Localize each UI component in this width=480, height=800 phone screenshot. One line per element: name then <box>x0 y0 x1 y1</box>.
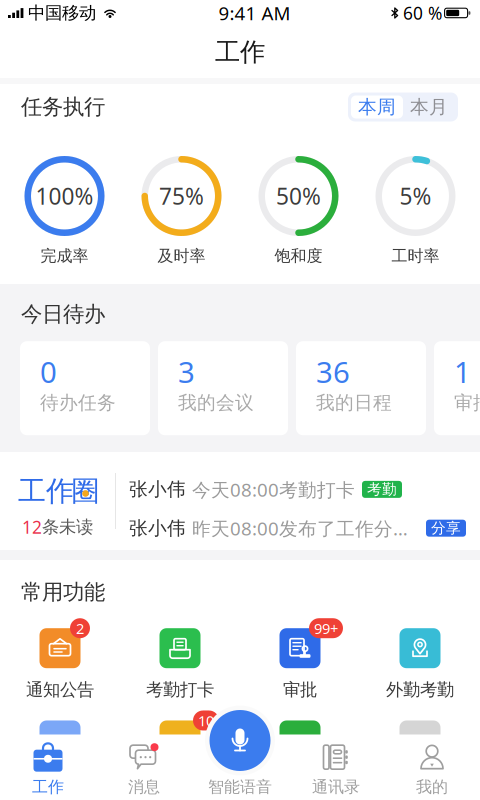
staticText: 昨天08:00发布了工作分… <box>192 516 408 541</box>
staticText: 张小伟 <box>129 478 186 501</box>
staticText: 60 % <box>403 1 442 24</box>
staticText: 工作 <box>215 36 265 67</box>
staticText: 智能语音 <box>208 777 272 797</box>
staticText: 消息 <box>128 777 160 797</box>
button[interactable]: 智能语音 <box>192 734 288 795</box>
staticText: 审批 <box>283 679 317 700</box>
staticText: 0 <box>40 352 57 391</box>
staticText: 条未读 <box>42 516 93 538</box>
staticText: 分享 <box>431 519 461 537</box>
button[interactable]: 1 <box>434 341 480 435</box>
staticText: 10 <box>198 711 214 730</box>
staticText: 今天08:00考勤打卡 <box>192 477 355 502</box>
button[interactable]: 消息 <box>96 734 192 795</box>
button[interactable]: 0 <box>20 341 150 435</box>
button[interactable] <box>360 720 480 794</box>
staticText: 我的会议 <box>178 391 254 414</box>
staticText: 12 <box>22 515 42 538</box>
staticText: 通知公告 <box>26 679 94 700</box>
button[interactable]: 75% <box>123 156 240 266</box>
staticText: 工时率 <box>391 246 439 266</box>
staticText: 及时率 <box>157 246 205 266</box>
staticText: 圈 <box>71 474 99 508</box>
staticText: 常用功能 <box>21 579 105 605</box>
staticText: 考勤 <box>367 480 397 498</box>
button[interactable]: 3 <box>158 341 288 435</box>
button[interactable] <box>0 720 120 794</box>
staticText: 张小伟 <box>129 517 186 540</box>
staticText: 1 <box>454 352 471 391</box>
staticText: 完成率 <box>40 246 88 266</box>
staticText: 3 <box>178 352 195 391</box>
button[interactable]: 36 <box>296 341 426 435</box>
staticText: 饱和度 <box>274 246 322 266</box>
staticText: 今日待办 <box>21 301 105 327</box>
button[interactable] <box>240 720 360 794</box>
button[interactable]: 5% <box>357 156 474 266</box>
staticText: 外勤考勤 <box>386 679 454 700</box>
staticText: 我的日程 <box>316 391 392 414</box>
staticText: 中国移动 <box>28 2 96 24</box>
button[interactable]: 外勤考勤 <box>360 628 480 700</box>
button[interactable]: 工作 <box>0 452 480 550</box>
button[interactable]: 本月 <box>403 95 455 118</box>
staticText: 考勤打卡 <box>146 679 214 700</box>
staticText: 本月 <box>410 95 448 118</box>
staticText: 36 <box>316 352 350 391</box>
staticText: 本周 <box>358 95 396 118</box>
button[interactable]: 工作 <box>0 734 96 795</box>
button[interactable]: 50% <box>240 156 357 266</box>
button[interactable]: 考勤打卡 <box>120 628 240 700</box>
button[interactable]: 99+ <box>240 628 360 700</box>
staticText: 审批 <box>454 391 480 414</box>
staticText: 通讯录 <box>312 777 360 797</box>
staticText: 工作 <box>18 474 74 508</box>
staticText: 待办任务 <box>40 391 116 414</box>
staticText: 50% <box>276 181 321 211</box>
button[interactable]: 100% <box>6 156 123 266</box>
staticText: 工作 <box>32 777 64 797</box>
button[interactable]: 我的 <box>384 734 480 795</box>
button[interactable]: 本周 <box>351 95 403 118</box>
staticText: 9:41 AM <box>218 1 290 25</box>
staticText: 75% <box>159 181 204 211</box>
staticText: 5% <box>399 181 431 211</box>
button[interactable]: 通讯录 <box>288 734 384 795</box>
button[interactable]: 2 <box>0 628 120 700</box>
staticText: 100% <box>35 181 93 211</box>
button[interactable]: 10 <box>120 720 240 794</box>
staticText: 我的 <box>416 777 448 797</box>
staticText: 2 <box>76 618 84 638</box>
button[interactable]: 智能语音 <box>205 705 275 775</box>
staticText: 任务执行 <box>21 94 105 120</box>
staticText: 99+ <box>314 618 338 638</box>
